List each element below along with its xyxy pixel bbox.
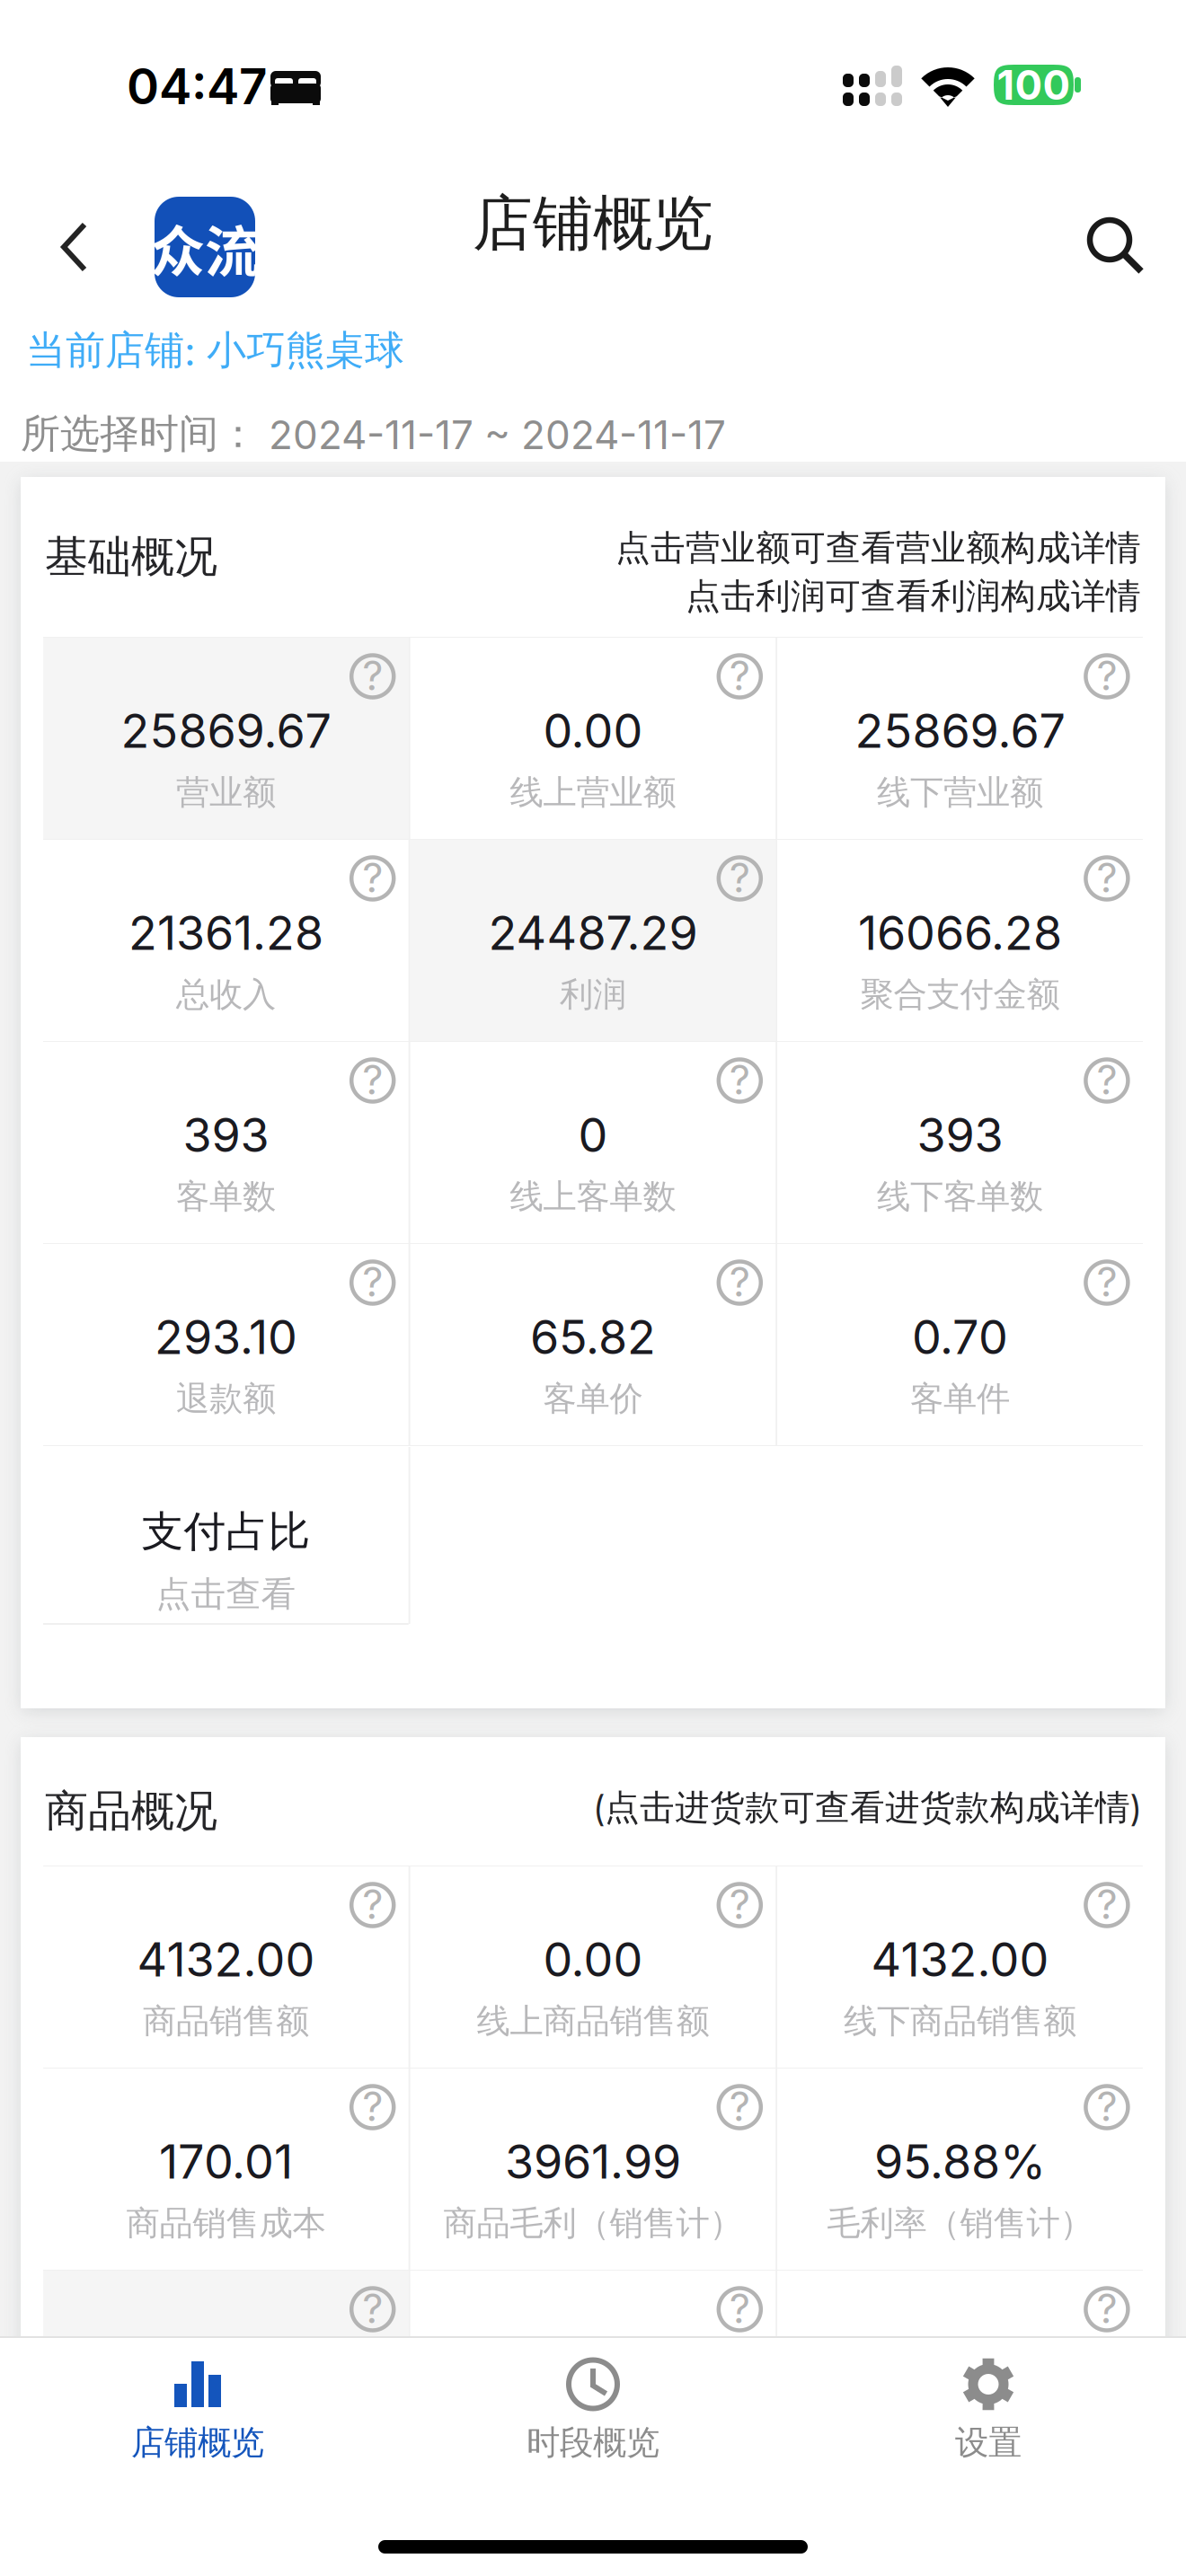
staticText: ? [362, 1257, 383, 1306]
staticText: 当前店铺: 小巧熊桌球 [26, 325, 404, 375]
staticText: ? [729, 1257, 750, 1306]
button[interactable]: 21361.28 [43, 840, 409, 1041]
button[interactable]: 170.01 [43, 2069, 409, 2270]
staticText: 商品毛利（销售计） [443, 2202, 743, 2244]
staticText: 营业额 [176, 771, 276, 814]
staticText: 65.82 [530, 1309, 656, 1365]
staticText: 100 [997, 60, 1071, 110]
staticText: 393 [917, 1107, 1003, 1163]
staticText: ? [362, 2284, 383, 2333]
staticText: (点击进货款可查看进货款构成详情) [594, 1786, 1141, 1829]
button[interactable]: 0 [410, 1042, 776, 1243]
staticText: 点击利润可查看利润构成详情 [685, 574, 1141, 618]
staticText: 线下营业额 [877, 771, 1043, 814]
button[interactable]: 4132.00 [43, 1866, 409, 2068]
button[interactable]: 时段概览 [395, 2338, 791, 2482]
staticText: ? [729, 2082, 750, 2131]
staticText: ? [362, 853, 383, 902]
button[interactable]: 65.82 [410, 1244, 776, 1445]
staticText: 25869.67 [855, 702, 1065, 759]
staticText: 商品概况 [45, 1784, 218, 1838]
button[interactable]: 当前店铺: 小巧熊桌球 [0, 316, 1185, 384]
staticText: ? [729, 1880, 750, 1929]
staticText: 393 [183, 1107, 269, 1163]
button[interactable]: 4132.00 [777, 1866, 1143, 2068]
button[interactable]: 店铺概览 [0, 2338, 395, 2482]
staticText: 店铺概览 [473, 186, 713, 261]
staticText: 0.00 [543, 1931, 643, 1988]
staticText: ? [729, 2284, 750, 2333]
staticText: 线上客单数 [510, 1176, 676, 1218]
staticText: ? [1097, 1257, 1117, 1306]
button[interactable] [43, 2271, 409, 2472]
button[interactable]: Back [28, 200, 121, 294]
staticText: ? [1097, 1055, 1117, 1104]
button[interactable]: 25869.67 [43, 638, 409, 839]
staticText: 线上营业额 [510, 771, 676, 814]
staticText: 基础概况 [45, 530, 218, 584]
staticText: ? [1097, 853, 1117, 902]
button[interactable]: 支付占比 [43, 1446, 409, 1623]
staticText: ? [1097, 2082, 1117, 2131]
button[interactable]: 16066.28 [777, 840, 1143, 1041]
button[interactable]: 3961.99 [410, 2069, 776, 2270]
staticText: 总收入 [176, 974, 276, 1016]
staticText: ? [362, 1055, 383, 1104]
button[interactable]: 293.10 [43, 1244, 409, 1445]
staticText: 170.01 [159, 2133, 293, 2190]
staticText: ? [729, 651, 750, 700]
button[interactable]: 设置 [791, 2338, 1186, 2482]
staticText: 21361.28 [128, 904, 323, 961]
staticText: 利润 [560, 974, 626, 1016]
staticText: 16066.28 [858, 904, 1062, 961]
staticText: 293.10 [154, 1309, 297, 1365]
staticText: 商品销售成本 [126, 2202, 326, 2244]
staticText: ? [362, 1880, 383, 1929]
staticText: ? [362, 2082, 383, 2131]
staticText: 店铺概览 [131, 2422, 264, 2464]
staticText: ? [1097, 651, 1117, 700]
staticText: 0.70 [912, 1309, 1008, 1365]
staticText: 0 [578, 1107, 608, 1163]
staticText: 客单数 [176, 1176, 276, 1218]
button[interactable]: Search [1066, 197, 1166, 297]
staticText: 点击查看 [156, 1572, 296, 1616]
staticText: ? [729, 1055, 750, 1104]
staticText: 线下商品销售额 [844, 2000, 1076, 2042]
button[interactable]: 0.00 [410, 638, 776, 839]
button[interactable]: 95.88% [777, 2069, 1143, 2270]
staticText: 众流 [150, 208, 260, 288]
staticText: 点击营业额可查看营业额构成详情 [615, 526, 1141, 570]
button[interactable]: 0.00 [410, 1866, 776, 2068]
staticText: 4132.00 [137, 1931, 315, 1988]
staticText: 时段概览 [527, 2422, 659, 2464]
staticText: 4132.00 [871, 1931, 1049, 1988]
button[interactable] [410, 2271, 776, 2472]
staticText: 所选择时间： 2024-11-17 ~ 2024-11-17 [21, 409, 726, 459]
staticText: 24487.29 [488, 904, 698, 961]
staticText: 95.88% [874, 2133, 1046, 2190]
staticText: 04:47 [127, 56, 267, 116]
staticText: 线下客单数 [877, 1176, 1043, 1218]
staticText: 客单价 [543, 1378, 643, 1420]
staticText: 线上商品销售额 [477, 2000, 709, 2042]
staticText: 0.00 [543, 702, 643, 759]
button[interactable]: 0.70 [777, 1244, 1143, 1445]
button[interactable]: 25869.67 [777, 638, 1143, 839]
button[interactable]: 393 [777, 1042, 1143, 1243]
staticText: 客单件 [910, 1378, 1010, 1420]
staticText: 设置 [955, 2422, 1022, 2464]
staticText: ? [362, 651, 383, 700]
button[interactable] [777, 2271, 1143, 2472]
staticText: 毛利率（销售计） [827, 2202, 1093, 2244]
staticText: 25869.67 [121, 702, 331, 759]
button[interactable]: 24487.29 [410, 840, 776, 1041]
staticText: 退款额 [176, 1378, 276, 1420]
staticText: 商品销售额 [143, 2000, 309, 2042]
staticText: 聚合支付金额 [860, 974, 1060, 1016]
staticText: 支付占比 [141, 1505, 310, 1558]
staticText: ? [1097, 2284, 1117, 2333]
staticText: ? [1097, 1880, 1117, 1929]
button[interactable]: 393 [43, 1042, 409, 1243]
staticText: 3961.99 [505, 2133, 681, 2190]
